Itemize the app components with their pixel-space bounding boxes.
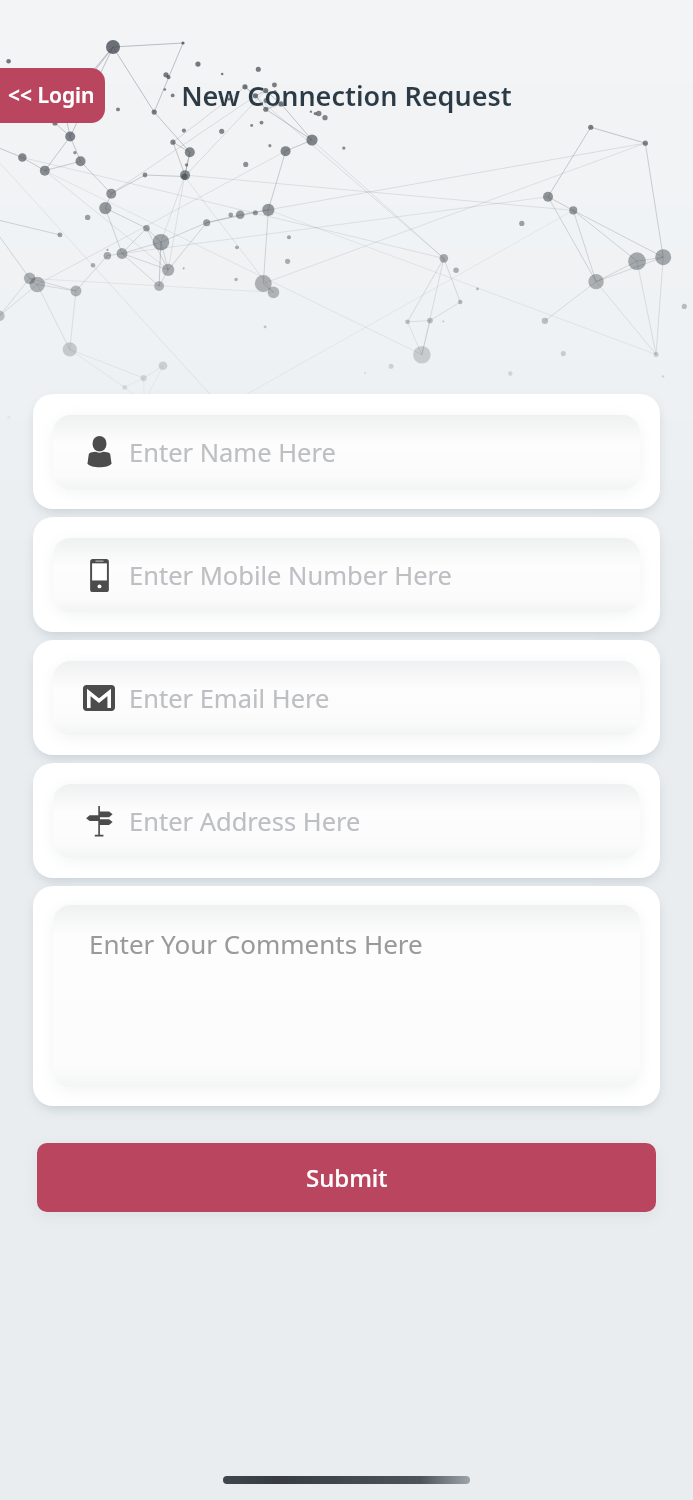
staticText: Enter Name Here: [129, 435, 336, 470]
button[interactable]: Email: [53, 661, 640, 735]
button[interactable]: Submit: [37, 1143, 656, 1212]
staticText: Enter Mobile Number Here: [129, 558, 452, 593]
other: Email: [83, 685, 115, 711]
other: Name: [87, 436, 112, 468]
button[interactable]: Mobile number: [53, 538, 640, 612]
button[interactable]: << Login: [0, 68, 105, 123]
button[interactable]: Name: [53, 415, 640, 489]
other: Address: [86, 806, 113, 837]
staticText: Submit: [306, 1161, 388, 1194]
staticText: Enter Your Comments Here: [89, 926, 423, 961]
button[interactable]: Enter Your Comments Here: [53, 905, 640, 1087]
staticText: Enter Address Here: [129, 804, 361, 839]
button[interactable]: Address: [53, 784, 640, 858]
other: Mobile number: [87, 559, 112, 592]
staticText: << Login: [8, 81, 95, 110]
staticText: New Connection Request: [0, 77, 693, 114]
staticText: Enter Email Here: [129, 681, 330, 716]
